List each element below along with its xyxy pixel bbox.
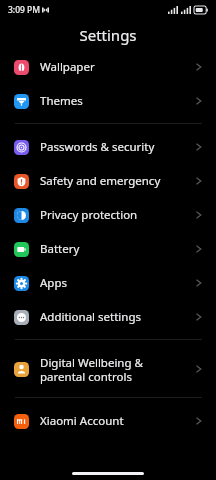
- staticText: Digital Wellbeing & parental controls: [40, 355, 143, 384]
- button[interactable]: Xiaomi Account: [0, 404, 216, 438]
- button[interactable]: Apps: [0, 266, 216, 300]
- staticText: Wallpaper: [40, 59, 95, 75]
- button[interactable]: Passwords & security: [0, 130, 216, 164]
- button[interactable]: Digital Wellbeing & parental controls: [0, 346, 216, 392]
- staticText: Themes: [40, 93, 83, 109]
- staticText: 3:09 PM: [8, 4, 41, 16]
- staticText: Settings: [79, 25, 137, 45]
- staticText: Passwords & security: [40, 139, 155, 155]
- button[interactable]: Privacy protection: [0, 198, 216, 232]
- staticText: Xiaomi Account: [40, 413, 124, 429]
- staticText: Battery: [40, 241, 80, 257]
- staticText: Privacy protection: [40, 207, 138, 223]
- staticText: Safety and emergency: [40, 173, 161, 189]
- button[interactable]: Themes: [0, 84, 216, 118]
- staticText: Additional settings: [40, 309, 142, 325]
- button[interactable]: Additional settings: [0, 300, 216, 334]
- staticText: Apps: [40, 275, 68, 291]
- button[interactable]: Safety and emergency: [0, 164, 216, 198]
- button[interactable]: Wallpaper: [0, 50, 216, 84]
- button[interactable]: Battery: [0, 232, 216, 266]
